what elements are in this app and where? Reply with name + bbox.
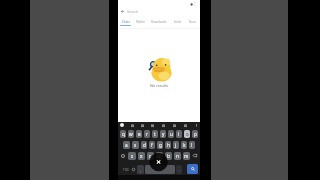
staticText: u: [170, 131, 173, 137]
button[interactable]: l: [189, 141, 195, 149]
button[interactable]: a: [123, 141, 130, 149]
other: Back: [121, 10, 124, 13]
button[interactable]: m: [183, 152, 190, 160]
staticText: x: [140, 153, 143, 159]
button[interactable]: b: [165, 152, 172, 160]
button[interactable]: h: [165, 141, 171, 149]
button[interactable]: r: [144, 130, 150, 138]
staticText: m: [184, 153, 189, 159]
staticText: k: [183, 142, 186, 148]
button[interactable]: q: [120, 130, 126, 138]
button[interactable]: z: [128, 152, 136, 160]
staticText: j: [175, 142, 177, 148]
button[interactable]: w: [128, 130, 134, 138]
button[interactable]: y: [160, 130, 166, 138]
button[interactable]: Clipboard: [130, 123, 134, 127]
staticText: n: [176, 153, 179, 159]
staticText: e: [138, 131, 141, 137]
button[interactable]: Backspace: [191, 151, 199, 160]
button[interactable]: Settings: [161, 123, 165, 127]
button[interactable]: Emoji: [131, 165, 136, 174]
staticText: y: [162, 131, 165, 137]
staticText: Docs: [189, 20, 196, 24]
button[interactable]: Links: [170, 16, 185, 28]
button[interactable]: n: [174, 152, 181, 160]
staticText: b: [167, 153, 170, 159]
button[interactable]: j: [173, 141, 179, 149]
staticText: o: [186, 131, 189, 137]
button[interactable]: More: [183, 123, 187, 127]
staticText: l: [191, 142, 193, 148]
button[interactable]: GIF: [140, 123, 144, 127]
staticText: ?123: [123, 168, 129, 172]
button[interactable]: e: [136, 130, 142, 138]
staticText: z: [131, 153, 134, 159]
staticText: w: [129, 131, 133, 137]
staticText: Links: [174, 20, 182, 24]
button[interactable]: k: [181, 141, 187, 149]
staticText: f: [151, 142, 153, 148]
staticText: h: [167, 142, 170, 148]
button[interactable]: Voice input: [194, 123, 198, 127]
button[interactable]: i: [176, 130, 182, 138]
staticText: g: [159, 142, 162, 148]
staticText: d: [143, 142, 146, 148]
staticText: Chats: [122, 20, 130, 24]
staticText: t: [154, 131, 156, 137]
staticText: Search: [127, 9, 138, 14]
button[interactable]: ?123: [122, 165, 130, 174]
button[interactable]: Media: [133, 16, 148, 28]
staticText: Media: [136, 20, 145, 24]
button[interactable]: Downloads: [148, 16, 170, 28]
button[interactable]: t: [152, 130, 158, 138]
button[interactable]: Sticker: [150, 123, 154, 127]
button[interactable]: f: [149, 141, 155, 149]
button[interactable]: o: [184, 130, 190, 138]
button[interactable]: s: [132, 141, 139, 149]
staticText: i: [178, 131, 180, 137]
staticText: p: [194, 131, 197, 137]
staticText: q: [122, 131, 125, 137]
button[interactable]: p: [192, 130, 198, 138]
staticText: v: [158, 153, 161, 159]
button[interactable]: .: [176, 165, 182, 174]
button[interactable]: Search: [187, 164, 198, 174]
button[interactable]: Space: [145, 165, 175, 174]
button[interactable]: Docs: [185, 16, 200, 28]
staticText: ,: [140, 167, 141, 172]
button[interactable]: g: [157, 141, 163, 149]
button[interactable]: Shift: [119, 151, 127, 160]
button[interactable]: Chats: [118, 16, 133, 28]
staticText: .: [179, 167, 180, 172]
staticText: c: [149, 153, 152, 159]
button[interactable]: Google: [120, 123, 124, 127]
button[interactable]: x: [138, 152, 145, 160]
button[interactable]: Translate: [172, 123, 176, 127]
button[interactable]: Back: [118, 7, 200, 16]
staticText: Downloads: [151, 20, 167, 24]
button[interactable]: d: [141, 141, 147, 149]
staticText: No results: [150, 83, 169, 88]
button[interactable]: v: [156, 152, 163, 160]
button[interactable]: u: [168, 130, 174, 138]
staticText: r: [146, 131, 148, 137]
button[interactable]: ,: [137, 165, 144, 174]
button[interactable]: c: [147, 152, 154, 160]
staticText: s: [134, 142, 137, 148]
staticText: a: [125, 142, 128, 148]
